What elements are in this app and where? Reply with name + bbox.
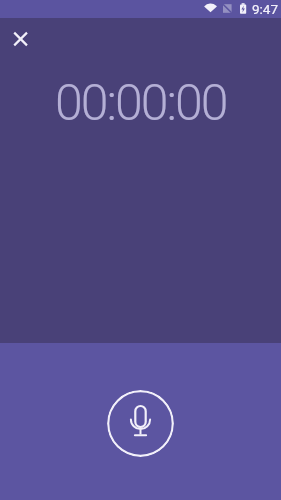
staticText: 00:00:00: [55, 74, 227, 133]
staticText: 9:47: [252, 1, 279, 17]
button[interactable]: [107, 390, 174, 457]
button[interactable]: [8, 27, 32, 51]
